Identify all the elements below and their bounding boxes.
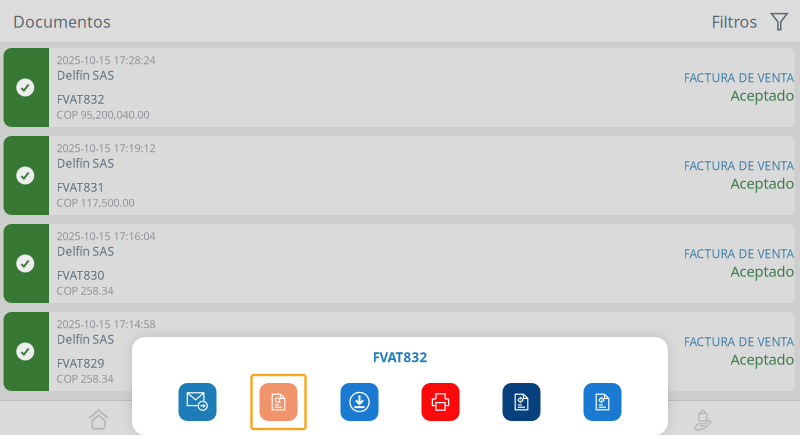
button[interactable]: 2025-10-15 17:28:24 [3, 48, 796, 127]
button[interactable]: Documentos [200, 400, 400, 435]
staticText: FACTURA DE VENTA [683, 69, 794, 85]
staticText: FVAT830 [56, 267, 104, 283]
staticText: Delfín SAS [56, 243, 114, 259]
button[interactable]: 2025-10-15 17:19:12 [3, 136, 796, 215]
staticText: COP 258.34 [56, 283, 113, 298]
button[interactable]: Descargar [332, 375, 386, 429]
staticText: Aceptado [730, 85, 794, 105]
staticText: FVAT831 [56, 179, 104, 195]
button[interactable]: Filtros [712, 0, 800, 43]
button[interactable]: Enviar por correo [170, 375, 224, 429]
staticText: Filtros [712, 11, 758, 32]
button[interactable]: Compras [600, 400, 800, 435]
staticText: Documentos [13, 11, 111, 32]
staticText: FACTURA DE VENTA [683, 333, 794, 349]
staticText: Delfín SAS [56, 331, 114, 347]
staticText: 2025-10-15 17:16:04 [56, 229, 155, 243]
button[interactable]: Reportes [400, 400, 600, 435]
staticText: COP 258.34 [56, 371, 113, 386]
staticText: Delfín SAS [56, 67, 114, 83]
staticText: FACTURA DE VENTA [683, 157, 794, 173]
staticText: 2025-10-15 17:19:12 [56, 141, 155, 155]
staticText: FVAT829 [56, 355, 104, 371]
button[interactable]: Documento PDF [575, 375, 629, 429]
button[interactable]: 2025-10-15 17:14:58 [3, 312, 796, 391]
staticText: FVAT832 [372, 348, 427, 366]
button[interactable]: Documento XML [494, 375, 548, 429]
button[interactable]: Ver documento [251, 375, 305, 429]
staticText: FACTURA DE VENTA [683, 245, 794, 261]
staticText: FVAT832 [56, 91, 104, 107]
staticText: Aceptado [730, 261, 794, 281]
staticText: Aceptado [730, 173, 794, 193]
staticText: COP 95,200,040.00 [56, 107, 149, 122]
staticText: COP 117,500.00 [56, 195, 134, 210]
staticText: 2025-10-15 17:14:58 [56, 317, 155, 331]
button[interactable]: 2025-10-15 17:16:04 [3, 224, 796, 303]
staticText: Aceptado [730, 349, 794, 369]
staticText: Delfín SAS [56, 155, 114, 171]
button[interactable]: Imprimir [413, 375, 467, 429]
button[interactable]: Inicio [0, 400, 200, 435]
staticText: 2025-10-15 17:28:24 [56, 53, 155, 67]
